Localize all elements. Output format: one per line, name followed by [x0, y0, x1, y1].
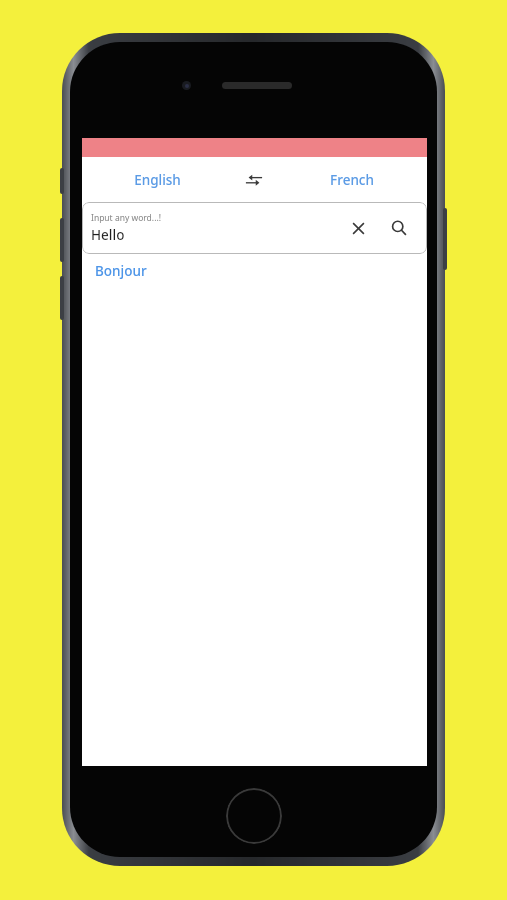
button[interactable]: Bonjour [82, 254, 427, 288]
staticText: Hello [91, 226, 125, 244]
staticText: French [330, 171, 374, 189]
button[interactable]: French [276, 157, 427, 202]
button[interactable]: Clear [344, 214, 372, 242]
staticText: Input any word...! [91, 212, 161, 224]
staticText: English [134, 171, 181, 189]
button[interactable]: Search [385, 214, 413, 242]
button[interactable]: Input any word...! [82, 202, 427, 254]
button[interactable]: Home [226, 788, 282, 844]
button[interactable]: Swap languages [232, 157, 276, 202]
staticText: Bonjour [95, 262, 147, 280]
button[interactable]: English [82, 157, 232, 202]
